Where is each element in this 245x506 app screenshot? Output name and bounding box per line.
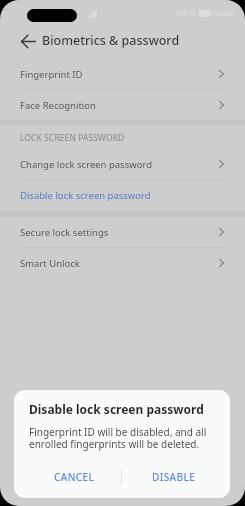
button[interactable]: Fingerprint ID	[0, 59, 245, 89]
staticText: Smart Unlock	[20, 257, 80, 270]
staticText: Face Recognition	[20, 99, 96, 112]
staticText: Change lock screen password	[20, 158, 153, 171]
button[interactable]: Disable lock screen password	[0, 180, 245, 210]
button[interactable]: Smart Unlock	[0, 248, 245, 278]
staticText: CANCEL	[54, 470, 95, 484]
staticText: DISABLE	[152, 470, 196, 484]
button[interactable]: Back	[15, 27, 42, 54]
staticText: Fingerprint ID will be disabled, and all…	[29, 425, 214, 451]
staticText: 100 %	[175, 8, 197, 18]
staticText: Disable lock screen password	[20, 189, 151, 202]
button[interactable]: Face Recognition	[0, 90, 245, 120]
staticText: Secure lock settings	[20, 226, 109, 239]
button[interactable]: CANCEL	[14, 463, 121, 491]
staticText: Biometrics & password	[42, 32, 180, 49]
staticText: 10:00	[214, 8, 234, 18]
button[interactable]: Secure lock settings	[0, 217, 245, 247]
staticText: Disable lock screen password	[29, 401, 204, 417]
button[interactable]: Change lock screen password	[0, 149, 245, 179]
button[interactable]: DISABLE	[122, 463, 230, 491]
staticText: Fingerprint ID	[20, 68, 83, 81]
staticText: LOCK SCREEN PASSWORD	[20, 132, 125, 143]
